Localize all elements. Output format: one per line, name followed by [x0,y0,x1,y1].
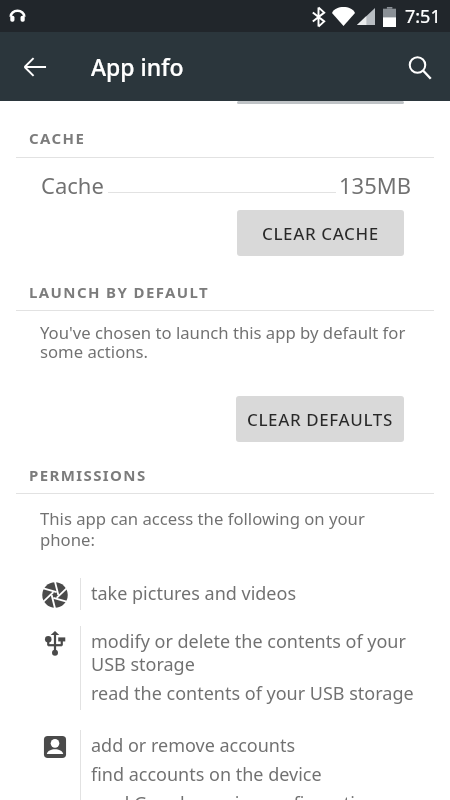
staticText: App info [91,51,184,82]
staticText: read the contents of your USB storage [91,681,414,704]
staticText: take pictures and videos [91,581,297,604]
staticText: LAUNCH BY DEFAULT [29,282,210,302]
button[interactable]: CLEAR CACHE [237,210,404,256]
button[interactable]: Back [10,42,60,92]
staticText: PERMISSIONS [29,465,147,485]
staticText: some actions. [40,340,149,363]
staticText: CACHE [29,128,86,148]
staticText: This app can access the following on you… [40,507,365,530]
staticText: add or remove accounts [91,733,296,756]
button[interactable]: Search [394,42,444,92]
staticText: Cache [41,170,104,200]
staticText: find accounts on the device [91,762,322,785]
staticText: modify or delete the contents of your [91,629,406,652]
staticText: CLEAR DEFAULTS [247,408,393,431]
staticText: You've chosen to launch this app by defa… [40,321,406,344]
staticText: read Google service configuration [91,791,377,800]
staticText: phone: [40,528,95,551]
staticText: CLEAR CACHE [262,222,379,245]
staticText: 135MB [339,170,412,200]
button[interactable]: CLEAR DEFAULTS [236,396,404,442]
staticText: 7:51 [405,4,441,29]
staticText: USB storage [91,652,195,675]
